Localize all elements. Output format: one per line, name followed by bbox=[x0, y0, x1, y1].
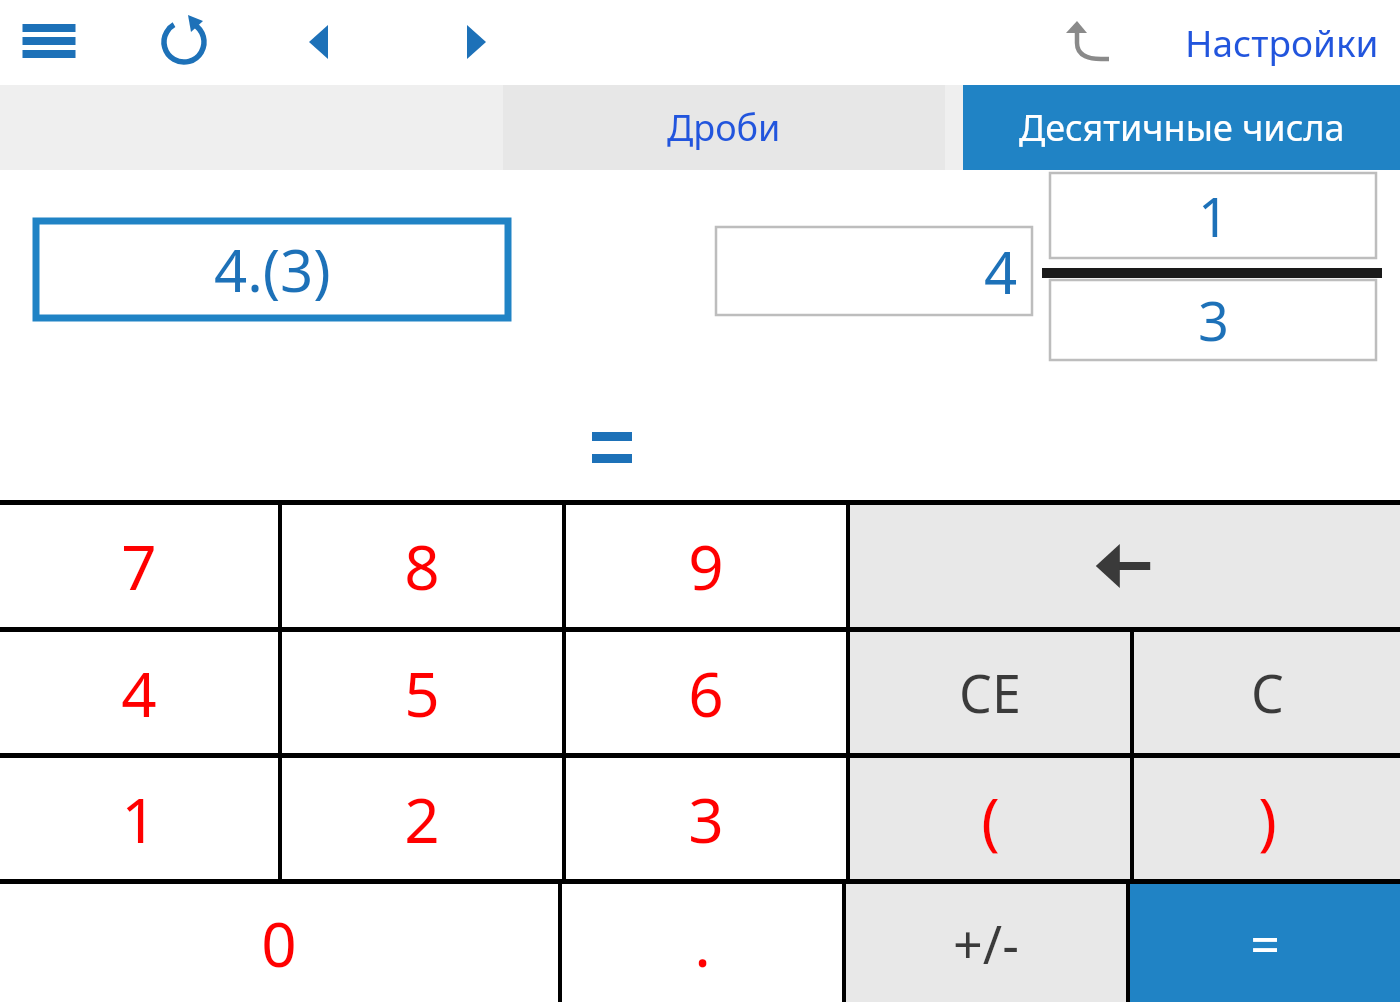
staticText: = bbox=[1250, 908, 1280, 979]
staticText: 3 bbox=[1198, 283, 1229, 357]
staticText: Дроби bbox=[667, 103, 781, 152]
button[interactable]: 7 bbox=[0, 505, 278, 627]
button[interactable]: Menu bbox=[14, 10, 84, 72]
button[interactable]: Undo bbox=[1058, 10, 1128, 72]
button[interactable]: 0 bbox=[0, 884, 558, 1002]
staticText: Десятичные числа bbox=[1019, 103, 1345, 152]
other: Backspace bbox=[850, 505, 1400, 627]
button[interactable]: 2 bbox=[282, 758, 562, 879]
staticText: 4 bbox=[984, 232, 1018, 311]
staticText: 9 bbox=[688, 524, 724, 608]
staticText: . bbox=[694, 901, 711, 985]
button[interactable]: 8 bbox=[282, 505, 562, 627]
staticText: 3 bbox=[688, 777, 724, 861]
button[interactable]: 3 bbox=[566, 758, 846, 879]
button[interactable]: ( bbox=[850, 758, 1130, 879]
button[interactable]: Настройки bbox=[1185, 4, 1395, 80]
button[interactable]: 4 bbox=[0, 632, 278, 753]
button[interactable]: ) bbox=[1134, 758, 1400, 879]
staticText: ( bbox=[981, 777, 1000, 861]
staticText: 4 bbox=[121, 651, 157, 735]
staticText: 7 bbox=[121, 524, 157, 608]
staticText: 8 bbox=[404, 524, 440, 608]
button[interactable]: C bbox=[1134, 632, 1400, 753]
staticText: 0 bbox=[261, 901, 297, 985]
button[interactable]: 1 bbox=[0, 758, 278, 879]
staticText: +/- bbox=[953, 908, 1019, 979]
staticText: 1 bbox=[1198, 179, 1229, 253]
button[interactable]: 4.(3) bbox=[36, 221, 508, 318]
staticText: ) bbox=[1258, 777, 1277, 861]
button[interactable]: Previous bbox=[288, 14, 350, 70]
staticText: 2 bbox=[404, 777, 440, 861]
button[interactable]: +/- bbox=[846, 884, 1126, 1002]
staticText: CE bbox=[959, 657, 1021, 728]
button[interactable]: . bbox=[562, 884, 842, 1002]
button[interactable]: Десятичные числа bbox=[963, 85, 1400, 170]
staticText: 6 bbox=[688, 651, 724, 735]
button[interactable]: Дроби bbox=[503, 85, 945, 170]
staticText: Настройки bbox=[1185, 17, 1379, 67]
button[interactable]: Backspace bbox=[850, 505, 1400, 627]
staticText: 1 bbox=[121, 777, 157, 861]
button[interactable]: Refresh bbox=[150, 8, 218, 72]
staticText: 5 bbox=[404, 651, 440, 735]
staticText: C bbox=[1251, 657, 1284, 728]
button[interactable]: 5 bbox=[282, 632, 562, 753]
staticText: 4.(3) bbox=[214, 230, 331, 309]
button[interactable]: = bbox=[1130, 884, 1400, 1002]
button[interactable]: 6 bbox=[566, 632, 846, 753]
button[interactable]: 9 bbox=[566, 505, 846, 627]
button[interactable]: Next bbox=[445, 14, 507, 70]
button[interactable]: CE bbox=[850, 632, 1130, 753]
